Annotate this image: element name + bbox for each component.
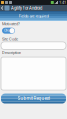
button[interactable]: Input code xyxy=(0,42,67,49)
staticText: Agility for Android xyxy=(11,5,42,11)
staticText: Fields are required xyxy=(18,14,48,18)
staticText: ON xyxy=(4,29,8,33)
button[interactable]: Motivated, on xyxy=(2,28,15,34)
button[interactable]: Add description xyxy=(0,57,67,90)
button[interactable]: Back xyxy=(0,5,4,11)
staticText: Description xyxy=(2,50,21,55)
staticText: Motivated? xyxy=(2,21,20,26)
staticText: 1:41 xyxy=(59,0,66,5)
staticText: Submit Request xyxy=(17,96,49,101)
button[interactable]: Submit Request xyxy=(0,94,67,104)
staticText: Site Code xyxy=(2,37,18,41)
